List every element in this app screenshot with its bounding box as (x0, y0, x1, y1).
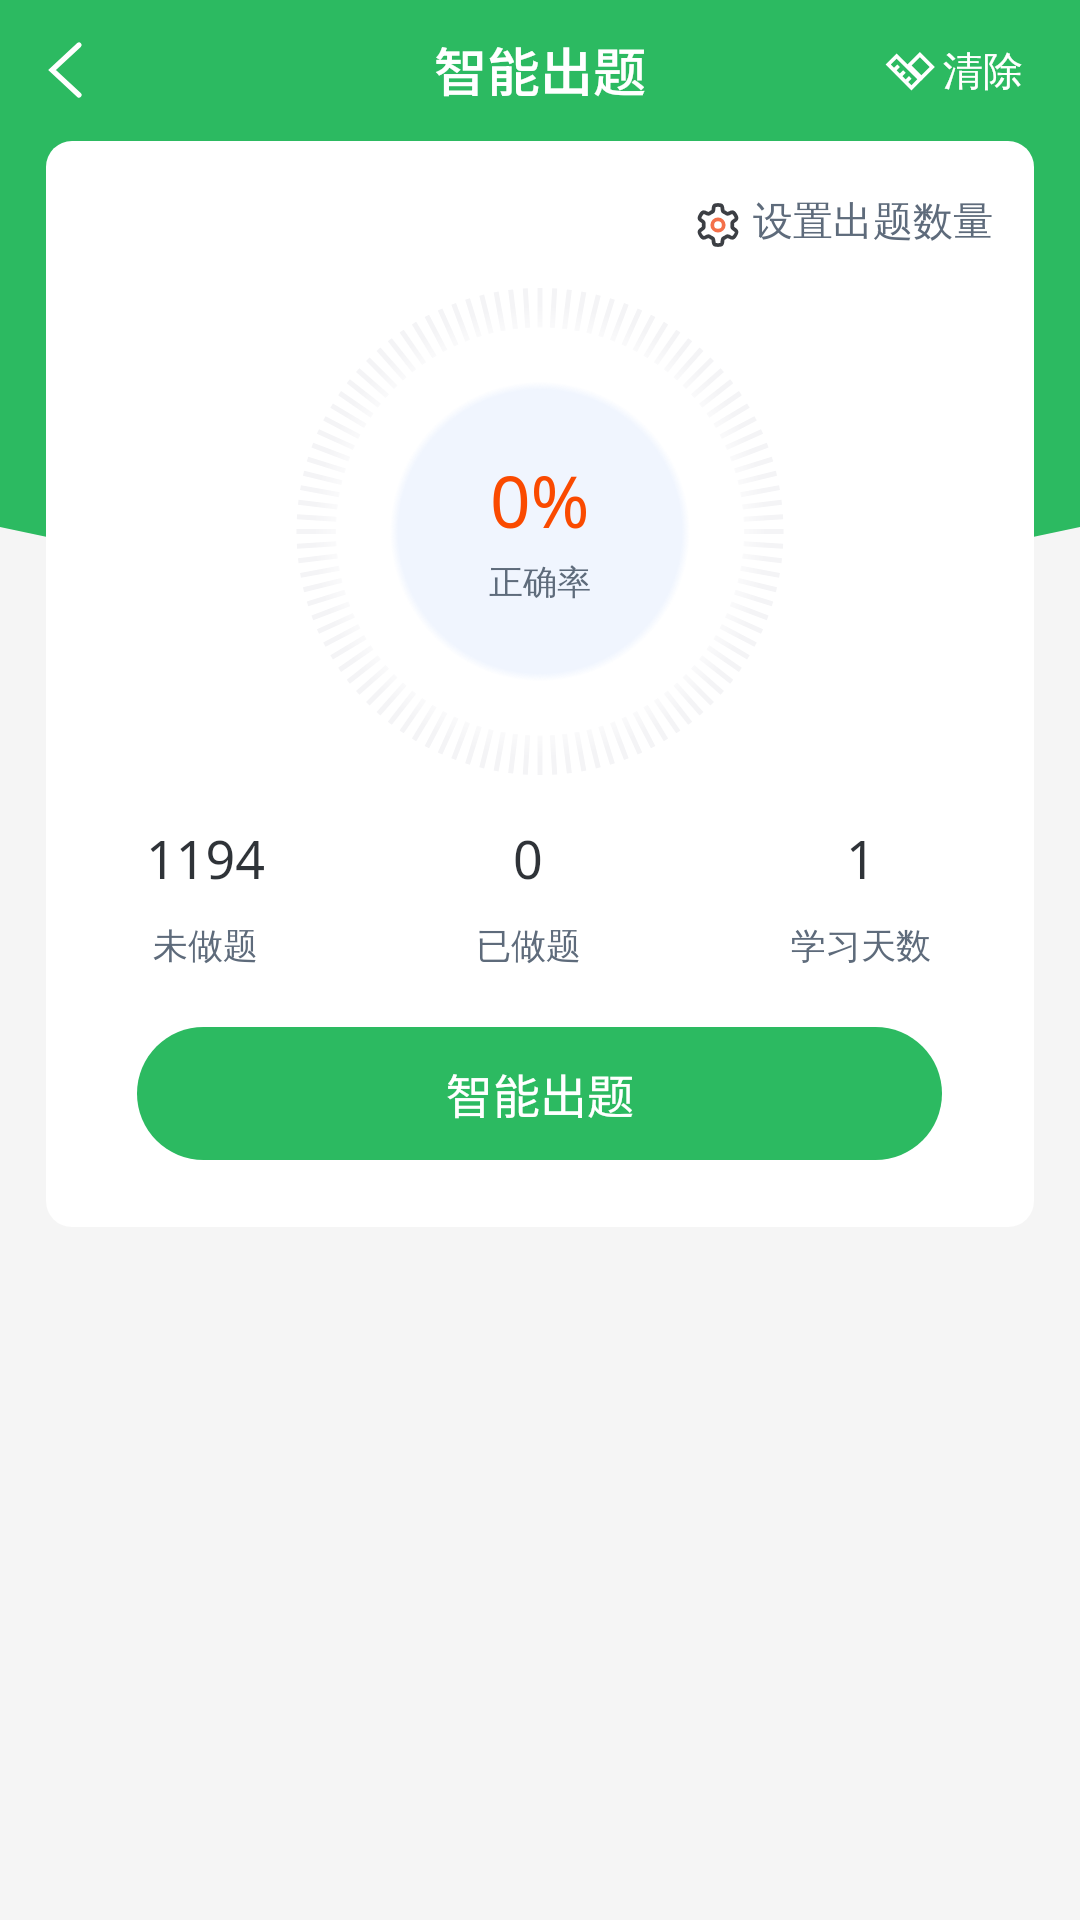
button[interactable]: 智能出题 (137, 1027, 942, 1160)
staticText: 正确率 (489, 561, 591, 604)
staticText: 未做题 (153, 924, 258, 968)
staticText: 设置出题数量 (753, 196, 993, 246)
staticText: 学习天数 (791, 924, 931, 968)
button[interactable]: 清除 (855, 8, 1050, 122)
staticText: 0 (513, 823, 543, 894)
staticText: 1194 (146, 823, 265, 894)
button[interactable]: Back (26, 31, 104, 109)
staticText: 1 (846, 823, 876, 894)
staticText: 智能出题 (434, 31, 646, 108)
staticText: 已做题 (476, 924, 581, 968)
button[interactable]: 设置出题数量 (679, 175, 1009, 275)
staticText: 清除 (943, 46, 1023, 96)
staticText: 0% (490, 452, 590, 549)
staticText: 智能出题 (446, 1059, 634, 1127)
